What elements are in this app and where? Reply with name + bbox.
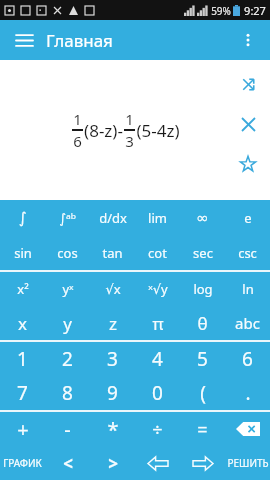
staticText: log bbox=[193, 280, 213, 298]
staticText: > bbox=[108, 452, 118, 475]
button[interactable]: ( bbox=[180, 376, 225, 410]
staticText: cos bbox=[57, 244, 78, 262]
staticText: 3 bbox=[125, 131, 134, 151]
staticText: π bbox=[152, 312, 164, 335]
button[interactable]: y bbox=[45, 306, 90, 340]
staticText: * bbox=[107, 416, 119, 443]
button[interactable]: Backspace bbox=[225, 412, 270, 446]
button[interactable]: yˣ bbox=[45, 272, 90, 306]
button[interactable]: lim bbox=[135, 200, 180, 235]
button[interactable]: Left bbox=[135, 446, 180, 480]
staticText: (5-4z) bbox=[136, 119, 180, 142]
button[interactable]: cot bbox=[135, 235, 180, 270]
button[interactable]: Clear bbox=[234, 110, 262, 138]
staticText: lim bbox=[148, 209, 167, 227]
staticText: - bbox=[64, 416, 71, 443]
staticText: РЕШИТЬ bbox=[227, 456, 269, 470]
staticText: 4 bbox=[152, 346, 163, 372]
staticText: 7 bbox=[17, 380, 28, 406]
staticText: ( bbox=[200, 380, 206, 406]
staticText: √x bbox=[105, 280, 121, 298]
staticText: abc bbox=[235, 313, 260, 333]
button[interactable]: Favorite bbox=[234, 150, 262, 178]
button[interactable]: π bbox=[135, 306, 180, 340]
button[interactable]: . bbox=[225, 376, 270, 410]
staticText: 1 bbox=[125, 109, 134, 129]
staticText: ˣ√y bbox=[148, 280, 168, 298]
button[interactable]: 6 bbox=[225, 342, 270, 376]
staticText: e bbox=[244, 209, 252, 227]
staticText: 9 bbox=[107, 380, 118, 406]
staticText: + bbox=[17, 416, 29, 443]
staticText: ∫ᵃᵇ bbox=[59, 209, 76, 227]
staticText: ∫ bbox=[19, 209, 27, 226]
button[interactable]: 1 bbox=[0, 342, 45, 376]
button[interactable]: ÷ bbox=[135, 412, 180, 446]
button[interactable]: Right bbox=[180, 446, 225, 480]
staticText: sec bbox=[193, 244, 213, 262]
button[interactable]: * bbox=[90, 412, 135, 446]
staticText: tan bbox=[102, 244, 123, 262]
button[interactable]: + bbox=[0, 412, 45, 446]
staticText: < bbox=[63, 452, 73, 475]
button[interactable]: 9 bbox=[90, 376, 135, 410]
button[interactable]: ln bbox=[225, 272, 270, 306]
button[interactable]: abc bbox=[225, 306, 270, 340]
button[interactable]: < bbox=[45, 446, 90, 480]
button[interactable]: - bbox=[45, 412, 90, 446]
staticText: x bbox=[18, 312, 27, 335]
button[interactable]: x bbox=[0, 306, 45, 340]
button[interactable]: РЕШИТЬ bbox=[225, 446, 270, 480]
button[interactable]: Expand bbox=[234, 70, 262, 98]
button[interactable]: 0 bbox=[135, 376, 180, 410]
staticText: d/dx bbox=[99, 209, 127, 227]
button[interactable]: sec bbox=[180, 235, 225, 270]
button[interactable]: = bbox=[180, 412, 225, 446]
staticText: y bbox=[63, 312, 72, 335]
button[interactable]: 3 bbox=[90, 342, 135, 376]
staticText: 59% bbox=[211, 4, 231, 18]
staticText: csc bbox=[238, 244, 257, 262]
button[interactable]: 7 bbox=[0, 376, 45, 410]
staticText: 2 bbox=[62, 346, 73, 372]
button[interactable]: ˣ√y bbox=[135, 272, 180, 306]
button[interactable]: csc bbox=[225, 235, 270, 270]
staticText: 6 bbox=[73, 131, 82, 151]
button[interactable]: > bbox=[90, 446, 135, 480]
button[interactable]: Menu bbox=[10, 26, 38, 54]
button[interactable]: sin bbox=[0, 235, 45, 270]
staticText: sin bbox=[14, 244, 32, 262]
staticText: 3 bbox=[107, 346, 118, 372]
staticText: 5 bbox=[197, 346, 208, 372]
button[interactable]: tan bbox=[90, 235, 135, 270]
staticText: ln bbox=[242, 280, 254, 298]
staticText: (8-z)- bbox=[84, 119, 123, 142]
staticText: 6 bbox=[242, 346, 253, 372]
staticText: 1 bbox=[73, 109, 82, 129]
staticText: z bbox=[109, 312, 117, 335]
button[interactable]: ∫ᵃᵇ bbox=[45, 200, 90, 235]
button[interactable]: cos bbox=[45, 235, 90, 270]
button[interactable]: θ bbox=[180, 306, 225, 340]
staticText: 0 bbox=[152, 380, 163, 406]
button[interactable]: 2 bbox=[45, 342, 90, 376]
button[interactable]: d/dx bbox=[90, 200, 135, 235]
button[interactable]: x² bbox=[0, 272, 45, 306]
button[interactable]: z bbox=[90, 306, 135, 340]
button[interactable]: 8 bbox=[45, 376, 90, 410]
button[interactable]: ∞ bbox=[180, 200, 225, 235]
staticText: 8 bbox=[62, 380, 73, 406]
staticText: = bbox=[197, 417, 208, 442]
staticText: ∞ bbox=[196, 209, 209, 226]
button[interactable]: √x bbox=[90, 272, 135, 306]
button[interactable]: ГРАФИК bbox=[0, 446, 45, 480]
staticText: 1 bbox=[17, 346, 28, 372]
button[interactable]: More options bbox=[234, 26, 262, 54]
button[interactable]: e bbox=[225, 200, 270, 235]
button[interactable]: 4 bbox=[135, 342, 180, 376]
button[interactable]: log bbox=[180, 272, 225, 306]
staticText: Главная bbox=[46, 29, 113, 52]
staticText: θ bbox=[197, 312, 208, 335]
button[interactable]: ∫ bbox=[0, 200, 45, 235]
button[interactable]: 5 bbox=[180, 342, 225, 376]
